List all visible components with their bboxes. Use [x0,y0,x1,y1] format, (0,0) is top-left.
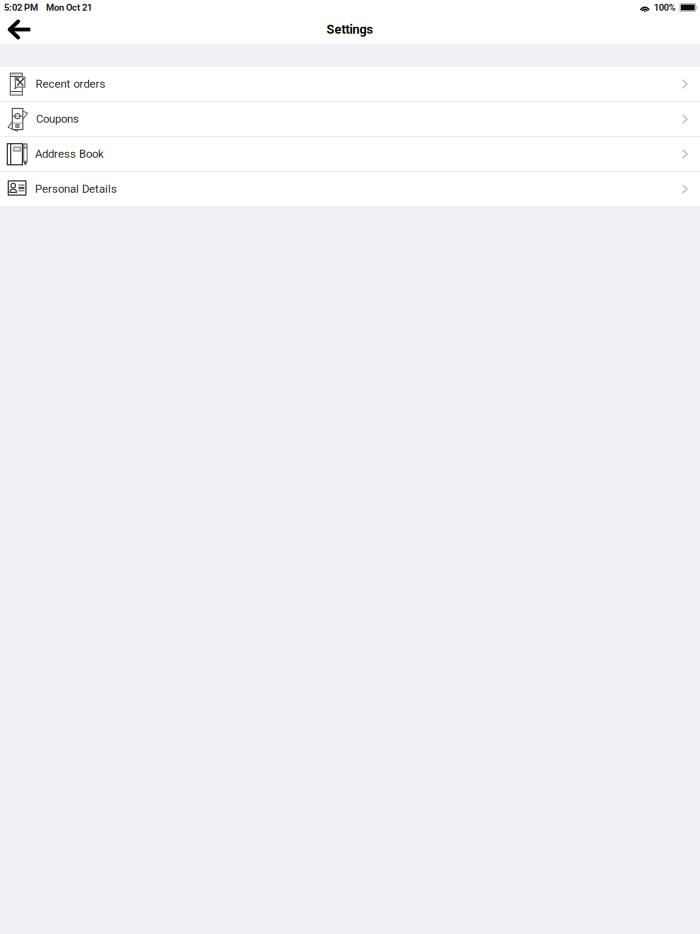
button[interactable]: Coupons [0,102,700,136]
button[interactable]: Address Book [0,137,700,171]
staticText: Settings [326,22,373,37]
staticText: Mon Oct 21 [46,2,92,13]
staticText: 5:02 PM [4,2,38,13]
staticText: Personal Details [35,182,117,196]
staticText: Recent orders [36,77,106,91]
staticText: Coupons [36,112,79,126]
staticText: 100% [654,2,676,13]
button[interactable]: Personal Details [0,172,700,206]
staticText: Address Book [35,147,104,161]
button[interactable]: Recent orders [0,67,700,101]
button[interactable]: Back [0,15,39,43]
